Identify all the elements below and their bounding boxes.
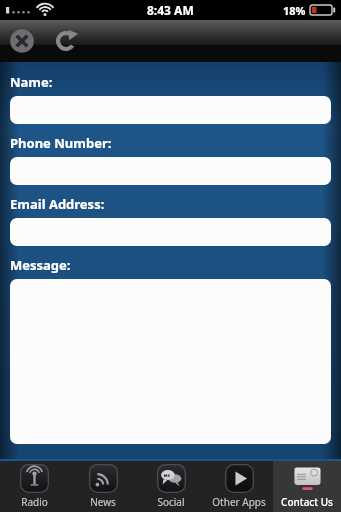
staticText: Contact Us: [281, 495, 333, 509]
button[interactable]: Close: [6, 25, 38, 57]
button[interactable]: News: [69, 459, 137, 512]
staticText: News: [90, 495, 116, 509]
button[interactable]: Radio: [0, 459, 69, 512]
button[interactable]: [10, 96, 331, 124]
staticText: Email Address:: [10, 195, 105, 213]
button[interactable]: Contact Us: [273, 459, 341, 512]
button[interactable]: Refresh: [50, 25, 82, 57]
button[interactable]: [10, 218, 331, 246]
button[interactable]: [10, 279, 331, 444]
staticText: 8:43 AM: [147, 2, 194, 18]
staticText: 18%: [283, 3, 306, 18]
button[interactable]: Other Apps: [205, 459, 273, 512]
staticText: Name:: [10, 73, 53, 91]
button[interactable]: [10, 157, 331, 185]
staticText: Message:: [10, 256, 71, 274]
button[interactable]: Social: [137, 459, 205, 512]
staticText: Social: [157, 495, 185, 509]
staticText: Other Apps: [212, 495, 266, 509]
staticText: Phone Number:: [10, 134, 112, 152]
staticText: Radio: [21, 495, 48, 509]
